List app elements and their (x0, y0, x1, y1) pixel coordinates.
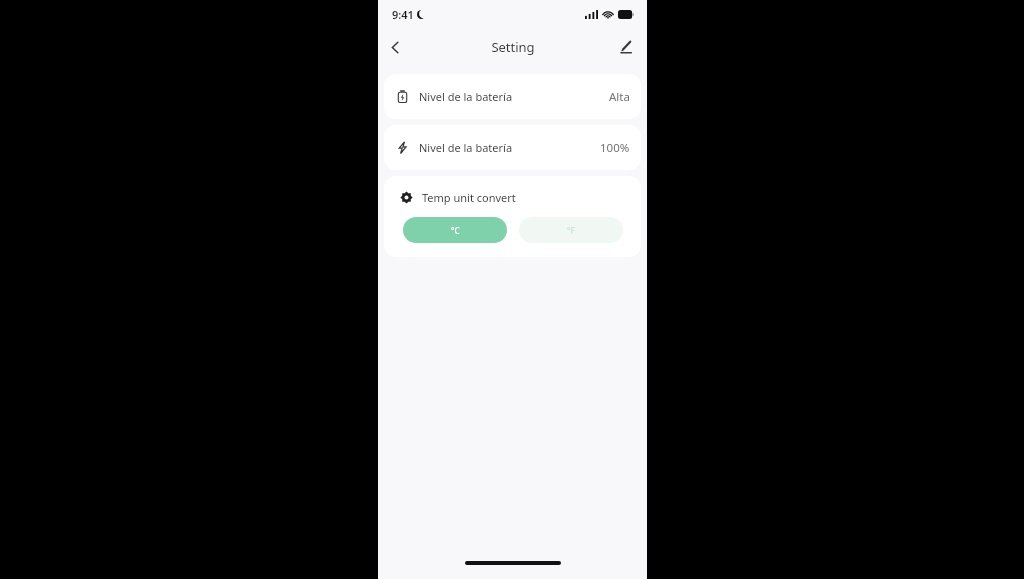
staticText: 100% (600, 140, 630, 156)
staticText: Setting (491, 38, 535, 56)
staticText: Temp unit convert (422, 190, 516, 205)
staticText: °C (451, 225, 460, 236)
staticText: 9:41 (392, 7, 414, 22)
button[interactable]: °C (403, 217, 507, 243)
staticText: °F (567, 225, 575, 236)
staticText: Nivel de la batería (419, 89, 513, 104)
staticText: Nivel de la batería (419, 140, 513, 155)
button[interactable]: Nivel de la batería (384, 74, 641, 119)
staticText: Alta (609, 89, 630, 105)
button[interactable]: Back (378, 30, 412, 64)
button[interactable]: Edit (611, 32, 641, 62)
button[interactable]: °F (519, 217, 623, 243)
button[interactable]: Nivel de la batería (384, 125, 641, 170)
